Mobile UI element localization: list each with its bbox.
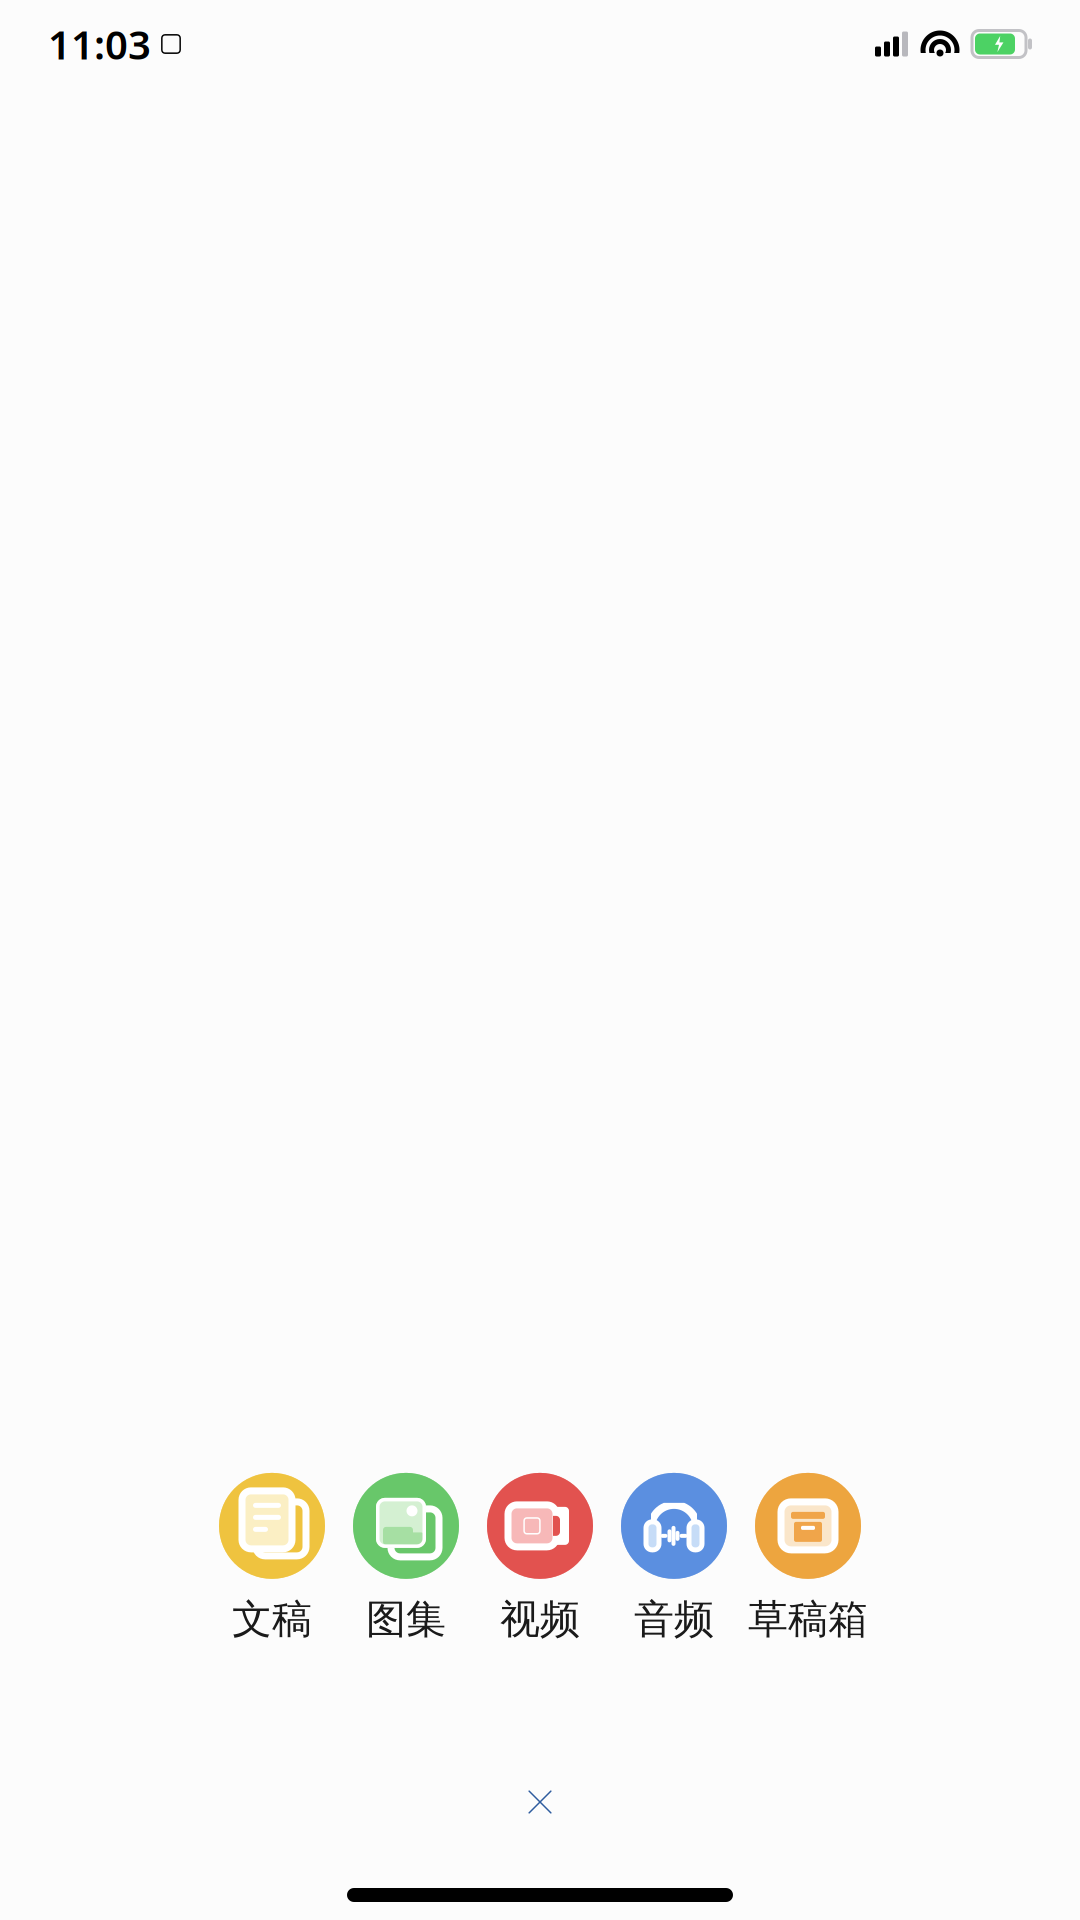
button[interactable]: 音频 <box>607 1473 741 1644</box>
button[interactable]: 草稿箱 <box>741 1473 875 1644</box>
button[interactable]: 文稿 <box>205 1473 339 1644</box>
staticText: 11:03 <box>48 17 151 70</box>
staticText: 文稿 <box>232 1595 312 1644</box>
button[interactable]: 关闭 <box>480 1756 600 1848</box>
button[interactable]: 视频 <box>473 1473 607 1644</box>
staticText: 图集 <box>366 1595 446 1644</box>
staticText: 草稿箱 <box>748 1595 868 1644</box>
staticText: 音频 <box>634 1595 714 1644</box>
button[interactable]: 图集 <box>339 1473 473 1644</box>
staticText: 视频 <box>500 1595 580 1644</box>
